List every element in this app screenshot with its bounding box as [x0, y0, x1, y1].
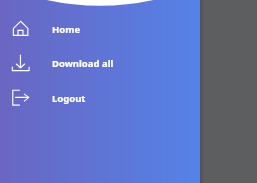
- staticText: Home: [52, 23, 81, 36]
- staticText: Logout: [52, 92, 86, 105]
- staticText: Download all: [52, 57, 114, 70]
- button[interactable]: Home: [0, 12, 200, 46]
- button[interactable]: Logout: [0, 81, 200, 115]
- button[interactable]: Download all: [0, 46, 200, 80]
